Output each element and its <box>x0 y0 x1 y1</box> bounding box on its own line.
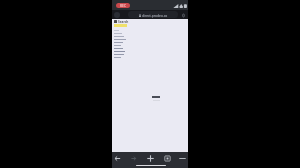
staticText: direct.prodeo.co <box>142 13 168 17</box>
button[interactable]: Tabs <box>162 153 173 164</box>
button[interactable]: Menu <box>177 153 188 164</box>
staticText: Search <box>118 20 129 23</box>
button[interactable]: New tab <box>145 153 156 164</box>
button[interactable]: Share <box>180 12 186 18</box>
staticText: REC <box>120 4 126 8</box>
button[interactable]: Site settings <box>114 12 120 18</box>
button[interactable]: Back <box>112 153 123 164</box>
button[interactable]: direct.prodeo.co <box>128 11 178 18</box>
button[interactable]: Forward <box>128 153 139 164</box>
button[interactable]: Search <box>114 20 129 23</box>
